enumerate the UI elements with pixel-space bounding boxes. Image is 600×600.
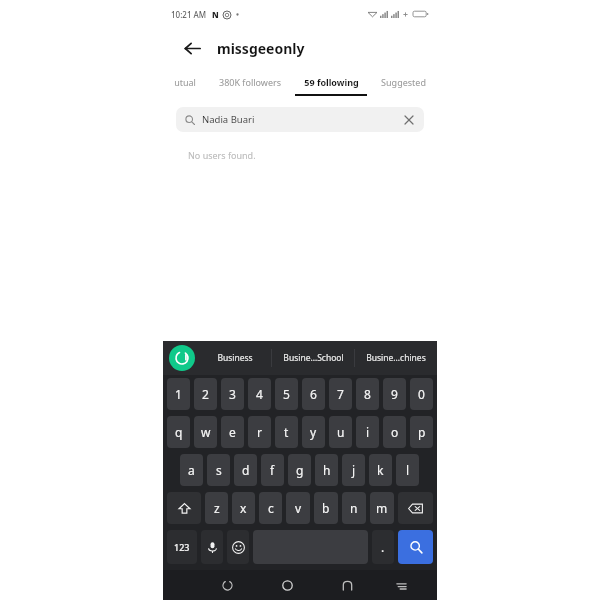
staticText: j	[352, 462, 356, 478]
button[interactable]: c	[259, 492, 282, 524]
button[interactable]: 5	[275, 378, 298, 410]
button[interactable]: z	[205, 492, 228, 524]
button[interactable]: f	[261, 454, 284, 486]
staticText: 7	[337, 386, 344, 402]
button[interactable]: p	[410, 416, 433, 448]
button[interactable]: g	[288, 454, 311, 486]
button[interactable]: Clear	[402, 113, 415, 126]
button[interactable]: 3	[221, 378, 244, 410]
button[interactable]: Emoji	[227, 530, 249, 564]
button[interactable]: s	[207, 454, 230, 486]
staticText: v	[295, 500, 302, 516]
staticText: 380K followers	[219, 76, 281, 88]
button[interactable]: 7	[329, 378, 352, 410]
button[interactable]: 0	[410, 378, 433, 410]
button[interactable]: 123	[167, 530, 197, 564]
staticText: Business	[217, 352, 253, 364]
button[interactable]: r	[248, 416, 271, 448]
button[interactable]: 9	[383, 378, 406, 410]
button[interactable]: v	[286, 492, 310, 524]
staticText: 4	[256, 386, 263, 402]
staticText: w	[201, 424, 211, 440]
staticText: g	[296, 462, 304, 478]
staticText: missgeeonly	[217, 39, 305, 58]
staticText: No users found.	[188, 149, 256, 161]
staticText: 10:21 AM	[171, 9, 207, 20]
button[interactable]: x	[232, 492, 255, 524]
button[interactable]: Search	[398, 530, 433, 564]
staticText: N	[212, 9, 219, 20]
staticText: f	[270, 462, 275, 478]
staticText: Suggested	[381, 76, 426, 88]
button[interactable]: 1	[167, 378, 190, 410]
button[interactable]: Back	[317, 570, 377, 600]
staticText: l	[406, 462, 410, 478]
button[interactable]: Backspace	[398, 492, 433, 524]
staticText: a	[188, 462, 195, 478]
button[interactable]: e	[221, 416, 244, 448]
staticText: u	[337, 424, 345, 440]
button[interactable]: u	[329, 416, 352, 448]
staticText: h	[323, 462, 331, 478]
button[interactable]: Home	[257, 570, 317, 600]
button[interactable]: 59 following	[292, 68, 370, 96]
button[interactable]: k	[369, 454, 392, 486]
staticText: o	[391, 424, 399, 440]
button[interactable]: 8	[356, 378, 379, 410]
staticText: 0	[418, 386, 425, 402]
button[interactable]: w	[194, 416, 217, 448]
button[interactable]: 4	[248, 378, 271, 410]
button[interactable]: Suggested	[370, 68, 437, 96]
staticText: x	[240, 500, 247, 516]
button[interactable]: n	[342, 492, 366, 524]
staticText: utual	[174, 76, 196, 88]
staticText: 6	[310, 386, 317, 402]
staticText: z	[214, 500, 220, 516]
button[interactable]: Grammarly	[169, 345, 195, 371]
button[interactable]: o	[383, 416, 406, 448]
staticText: i	[366, 424, 370, 440]
staticText: 1	[175, 386, 182, 402]
button[interactable]: Recents	[197, 570, 257, 600]
button[interactable]: 380K followers	[207, 68, 292, 96]
staticText: p	[418, 424, 426, 440]
button[interactable]: Nadia Buari	[176, 107, 424, 132]
button[interactable]: m	[370, 492, 394, 524]
button[interactable]: 6	[302, 378, 325, 410]
staticText: 5	[283, 386, 290, 402]
button[interactable]: d	[234, 454, 257, 486]
button[interactable]: y	[302, 416, 325, 448]
button[interactable]: Business	[198, 341, 271, 375]
button[interactable]: t	[275, 416, 298, 448]
button[interactable]: Voice input	[201, 530, 223, 564]
staticText: t	[284, 424, 289, 440]
button[interactable]: i	[356, 416, 379, 448]
button[interactable]: utual	[163, 68, 207, 96]
button[interactable]: .	[372, 530, 394, 564]
button[interactable]: b	[314, 492, 338, 524]
staticText: q	[175, 424, 183, 440]
staticText: k	[377, 462, 384, 478]
staticText: c	[268, 500, 274, 516]
button[interactable]: j	[342, 454, 365, 486]
button[interactable]: Shift	[167, 492, 201, 524]
button[interactable]: q	[167, 416, 190, 448]
staticText: Nadia Buari	[202, 113, 255, 126]
staticText: r	[257, 424, 262, 440]
staticText: y	[310, 424, 317, 440]
button[interactable]: Busine…chines	[355, 341, 437, 375]
staticText: 59 following	[304, 76, 359, 88]
staticText: e	[229, 424, 236, 440]
button[interactable]: h	[315, 454, 338, 486]
staticText: 3	[229, 386, 236, 402]
button[interactable]: Back	[177, 33, 207, 63]
button[interactable]: Busine…School	[272, 341, 354, 375]
button[interactable]: l	[396, 454, 419, 486]
staticText: b	[322, 500, 330, 516]
staticText: 123	[174, 541, 190, 553]
button[interactable]: 2	[194, 378, 217, 410]
staticText: Busine…School	[283, 352, 344, 364]
button[interactable]: a	[180, 454, 203, 486]
button[interactable]: Menu	[377, 570, 425, 600]
